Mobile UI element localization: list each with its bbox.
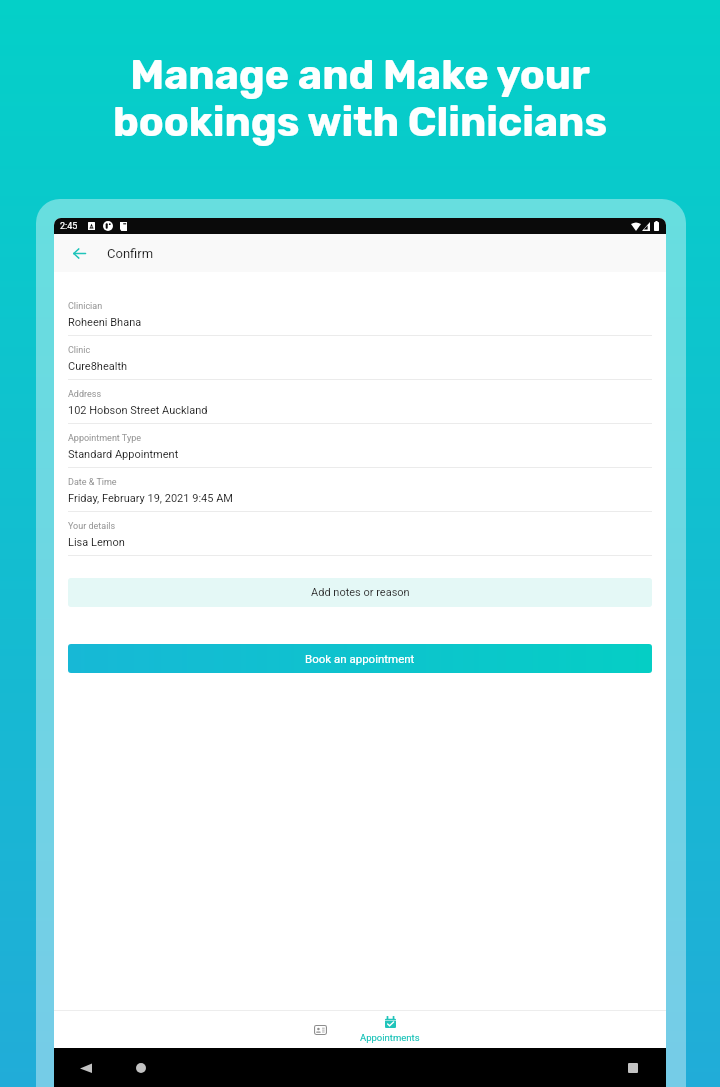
staticText: Add notes or reason (311, 586, 410, 599)
staticText: Address (68, 389, 102, 400)
staticText: Clinician (68, 301, 103, 312)
button[interactable]: Your details (68, 512, 652, 556)
button[interactable]: Recents (621, 1056, 645, 1080)
staticText: Date & Time (68, 477, 117, 488)
button[interactable]: Back (74, 1056, 98, 1080)
staticText: Cure8health (68, 360, 128, 373)
staticText: Clinic (68, 345, 91, 356)
button[interactable]: Date & Time (68, 468, 652, 512)
button[interactable]: Home (129, 1056, 153, 1080)
button[interactable]: Add notes or reason (68, 578, 652, 607)
staticText: Roheeni Bhana (68, 316, 142, 329)
staticText: Standard Appointment (68, 448, 179, 461)
button[interactable]: Appointment Type (68, 424, 652, 468)
staticText: Appointments (360, 1032, 420, 1043)
staticText: 102 Hobson Street Auckland (68, 404, 208, 417)
staticText: Lisa Lemon (68, 536, 125, 549)
button[interactable]: Clinic (68, 336, 652, 380)
staticText: Confirm (107, 246, 154, 261)
button[interactable]: Address (68, 380, 652, 424)
button[interactable]: Clinician (68, 292, 652, 336)
staticText: Your details (68, 521, 116, 532)
button[interactable]: Profile (290, 1011, 350, 1048)
staticText: Manage and Make your bookings with Clini… (0, 51, 720, 146)
button[interactable]: Back (67, 241, 91, 265)
staticText: 2:45 (60, 221, 78, 232)
staticText: Friday, February 19, 2021 9:45 AM (68, 492, 233, 505)
button[interactable]: Book an appointment (68, 644, 652, 673)
staticText: Book an appointment (305, 652, 415, 665)
staticText: Appointment Type (68, 433, 141, 444)
button[interactable]: Appointments (350, 1011, 430, 1048)
